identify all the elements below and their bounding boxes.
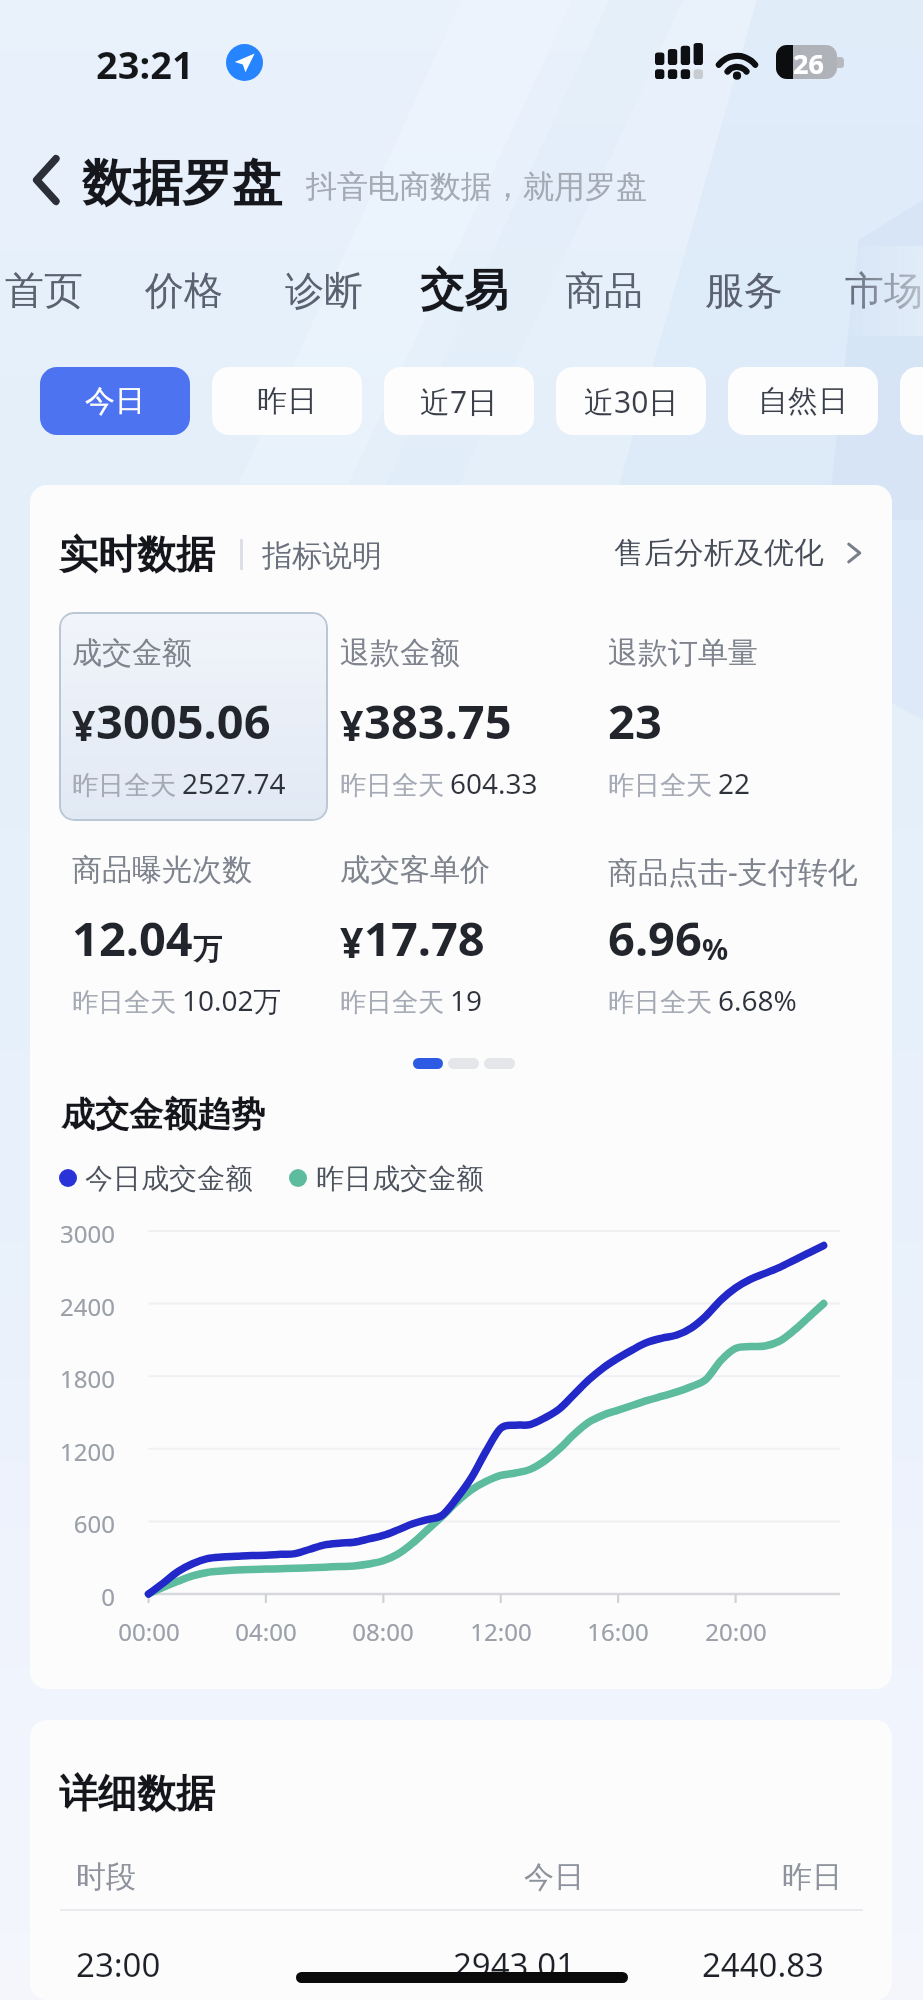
staticText: 昨日全天: [340, 986, 444, 1019]
staticText: 今日成交金额: [85, 1161, 253, 1196]
staticText: 3000: [30, 1217, 115, 1250]
button[interactable]: Page 1: [413, 1052, 443, 1074]
staticText: 04:00: [216, 1615, 316, 1648]
staticText: 服务: [705, 266, 783, 315]
staticText: 600: [30, 1507, 115, 1540]
staticText: 成交金额趋势: [61, 1093, 265, 1136]
staticText: 昨日全天: [340, 769, 444, 802]
button[interactable]: 服务: [694, 248, 794, 332]
staticText: 详细数据: [59, 1769, 215, 1818]
button[interactable]: 自定义: [900, 367, 923, 435]
staticText: 昨日成交金额: [316, 1161, 484, 1196]
staticText: 近7日: [420, 381, 498, 422]
staticText: 604.33: [450, 764, 538, 802]
staticText: 抖音电商数据，就用罗盘: [306, 167, 647, 206]
staticText: 价格: [145, 266, 223, 315]
staticText: 16:00: [568, 1615, 668, 1648]
staticText: 市场: [845, 266, 923, 315]
staticText: 时段: [76, 1858, 136, 1896]
staticText: 23: [608, 689, 662, 753]
staticText: 20:00: [686, 1615, 786, 1648]
staticText: 诊断: [285, 266, 363, 315]
staticText: 昨日全天: [608, 769, 712, 802]
staticText: 成交客单价: [340, 851, 490, 889]
staticText: 首页: [5, 266, 83, 315]
staticText: 退款金额: [340, 634, 460, 672]
staticText: 2400: [30, 1290, 115, 1323]
staticText: 指标说明: [262, 537, 382, 575]
staticText: 3005.06: [96, 689, 271, 753]
button[interactable]: Back: [16, 150, 76, 210]
staticText: 17.78: [364, 906, 485, 970]
staticText: 22: [718, 764, 751, 802]
staticText: 成交金额: [72, 634, 192, 672]
staticText: 今日: [429, 1858, 679, 1896]
button[interactable]: 售后分析及优化: [614, 530, 866, 576]
button[interactable]: Page 2: [448, 1052, 479, 1074]
staticText: 售后分析及优化: [614, 534, 824, 572]
staticText: 近30日: [584, 381, 679, 422]
staticText: 昨日: [592, 1858, 842, 1896]
button[interactable]: 成交金额: [72, 606, 344, 820]
staticText: 26: [793, 45, 824, 79]
staticText: 商品曝光次数: [72, 851, 252, 889]
staticText: 6.68%: [718, 981, 797, 1019]
button[interactable]: [59, 612, 328, 821]
button[interactable]: 今日: [40, 367, 190, 435]
staticText: 6.96: [608, 906, 702, 970]
staticText: 10.02万: [182, 981, 282, 1019]
button[interactable]: 交易: [409, 248, 519, 332]
button[interactable]: 商品: [554, 248, 654, 332]
staticText: 昨日全天: [72, 986, 176, 1019]
staticText: 退款订单量: [608, 634, 758, 672]
staticText: 数据罗盘: [82, 152, 282, 215]
staticText: 昨日全天: [72, 769, 176, 802]
button[interactable]: 昨日: [212, 367, 362, 435]
staticText: 12:00: [451, 1615, 551, 1648]
staticText: 383.75: [364, 689, 512, 753]
staticText: 12.04: [72, 906, 193, 970]
staticText: 昨日: [257, 382, 317, 420]
staticText: 昨日全天: [608, 986, 712, 1019]
staticText: 08:00: [333, 1615, 433, 1648]
staticText: 自然日: [758, 382, 848, 420]
button[interactable]: 商品曝光次数: [72, 823, 344, 1037]
button[interactable]: 退款订单量: [608, 606, 880, 820]
button[interactable]: Page 3: [484, 1052, 515, 1074]
staticText: 23:21: [96, 38, 194, 90]
staticText: 交易: [420, 263, 508, 318]
button[interactable]: 成交客单价: [340, 823, 612, 1037]
button[interactable]: 诊断: [274, 248, 374, 332]
staticText: 2440.83: [574, 1942, 824, 1987]
button[interactable]: 近30日: [556, 367, 706, 435]
staticText: 商品: [565, 266, 643, 315]
staticText: %: [702, 929, 729, 968]
staticText: 23:00: [76, 1942, 161, 1987]
staticText: 万: [193, 931, 222, 968]
staticText: ¥: [340, 697, 364, 753]
staticText: 实时数据: [59, 530, 215, 579]
staticText: 00:00: [99, 1615, 199, 1648]
staticText: 1800: [30, 1362, 115, 1395]
button[interactable]: 首页: [0, 248, 94, 332]
staticText: 2943.01: [389, 1942, 639, 1987]
button[interactable]: 价格: [134, 248, 234, 332]
staticText: 19: [450, 981, 483, 1019]
staticText: ¥: [72, 697, 96, 753]
staticText: 2527.74: [182, 764, 286, 802]
staticText: 1200: [30, 1435, 115, 1468]
button[interactable]: 市场: [834, 248, 923, 332]
staticText: ¥: [340, 914, 364, 970]
button[interactable]: 近7日: [384, 367, 534, 435]
button[interactable]: 退款金额: [340, 606, 612, 820]
button[interactable]: 23:00: [46, 1926, 876, 1996]
staticText: 商品点击-支付转化: [608, 851, 858, 892]
staticText: 0: [30, 1580, 115, 1613]
staticText: 今日: [85, 382, 145, 420]
button[interactable]: 自然日: [728, 367, 878, 435]
button[interactable]: 商品点击-支付转化: [608, 823, 880, 1037]
